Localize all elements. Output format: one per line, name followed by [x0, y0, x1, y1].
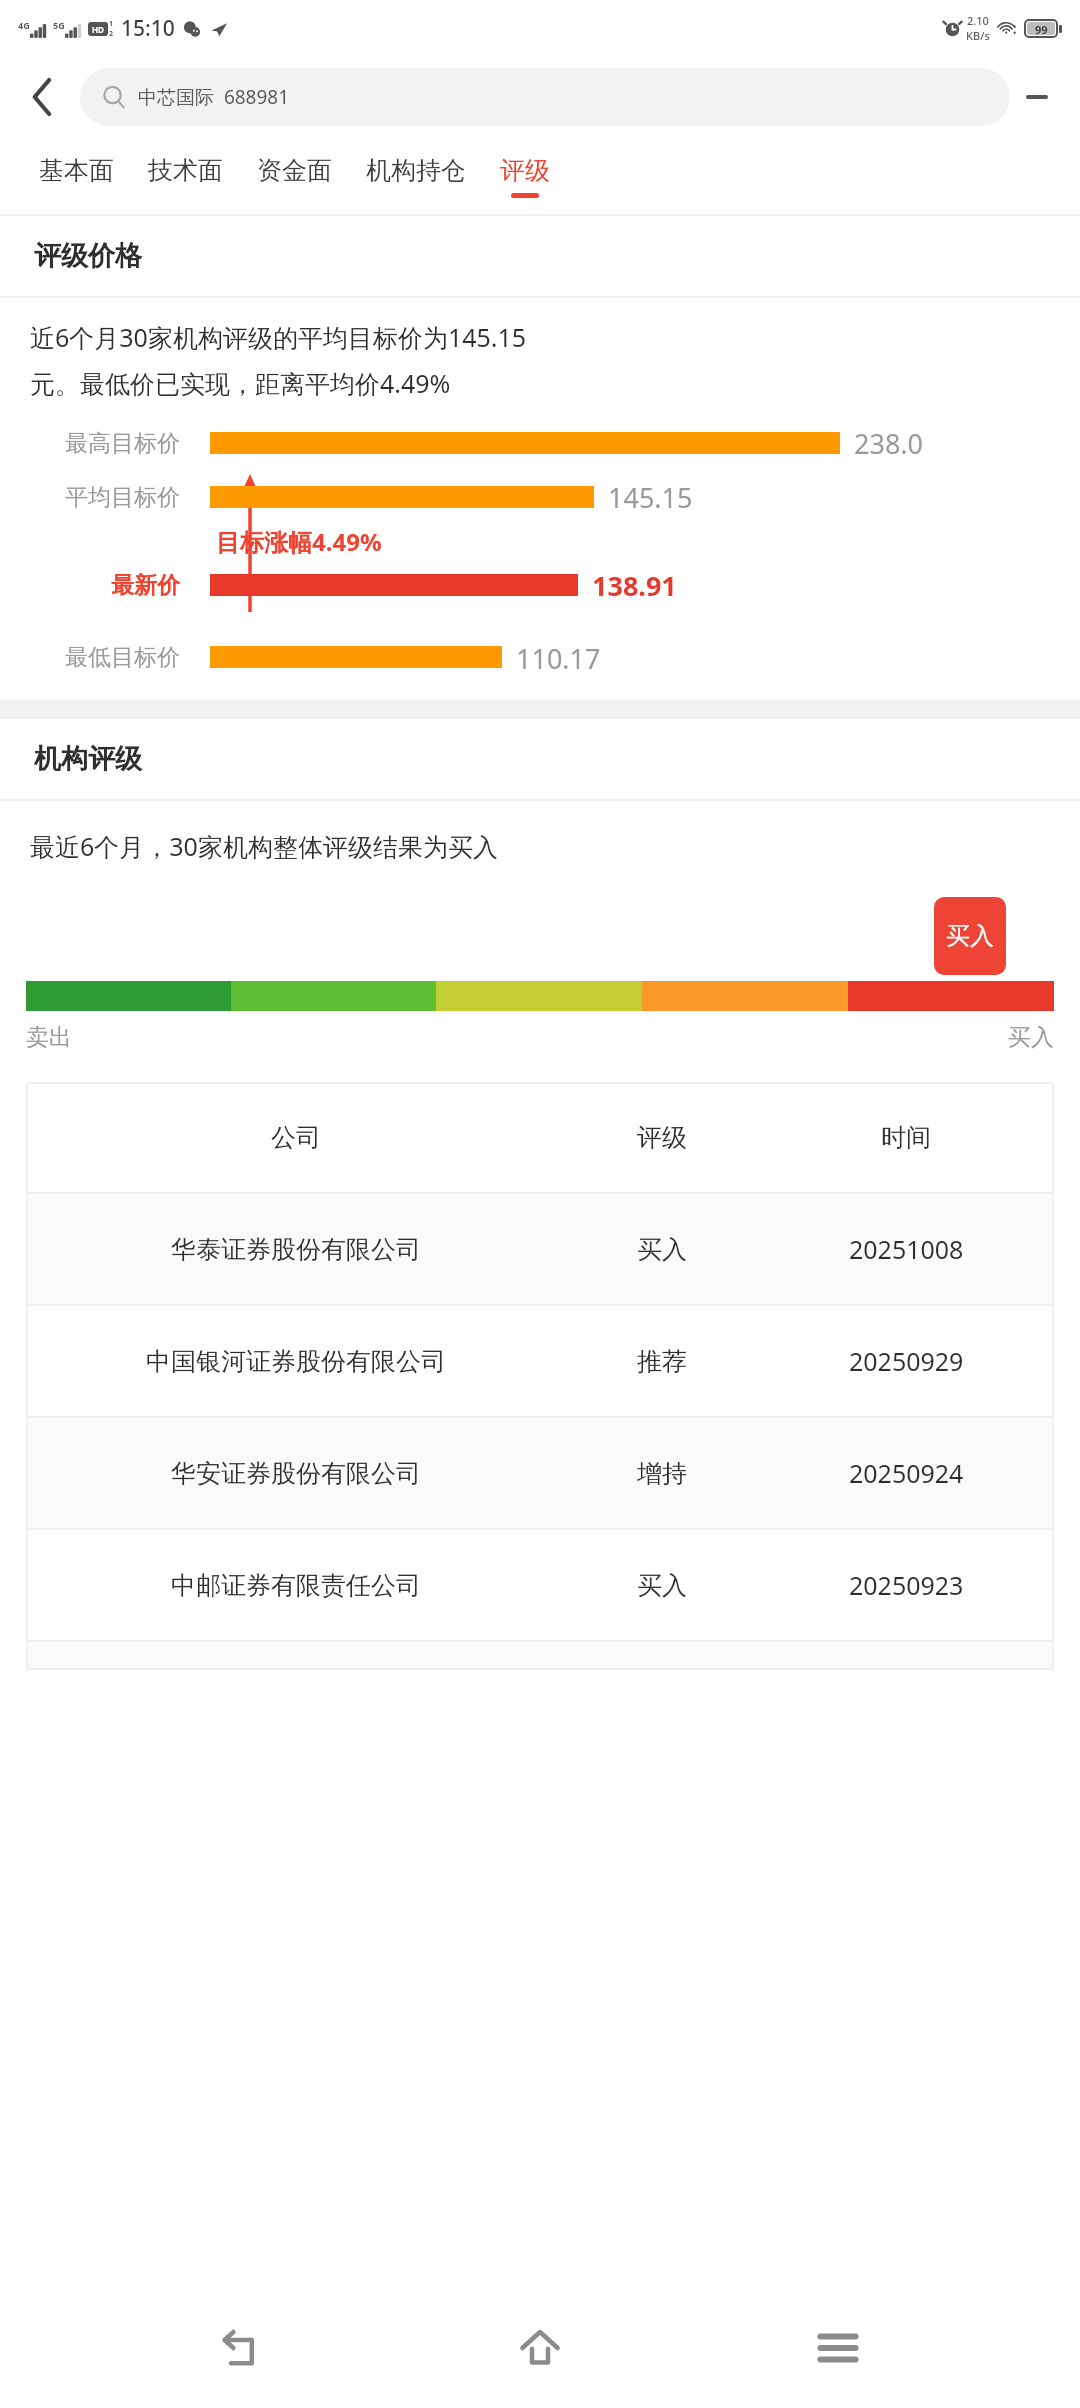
staticText: 评级	[500, 155, 550, 186]
staticText: 目标涨幅4.49%	[216, 525, 382, 558]
button[interactable]: 中芯国际 688981	[80, 68, 1010, 126]
staticText: 20250923	[849, 1568, 964, 1602]
staticText: 推荐	[637, 1346, 687, 1377]
staticText: 15:10	[121, 14, 175, 43]
staticText: 238.0	[854, 425, 924, 462]
staticText: 买入	[946, 921, 994, 951]
staticText: 中邮证券有限责任公司	[171, 1570, 421, 1601]
staticText: 近6个月30家机构评级的平均目标价为145.15	[30, 320, 527, 354]
staticText: 最新价	[111, 571, 180, 600]
staticText: 2.10	[967, 13, 989, 28]
staticText: 110.17	[516, 640, 601, 674]
button[interactable]: Minimize	[1010, 70, 1064, 124]
staticText: 机构持仓	[366, 155, 466, 186]
staticText: 145.15	[608, 479, 693, 516]
button[interactable]: 资金面	[240, 138, 349, 214]
staticText: 增持	[637, 1458, 687, 1489]
staticText: 机构评级	[34, 742, 142, 776]
button[interactable]: 评级	[483, 138, 567, 214]
staticText: 中国银河证券股份有限公司	[146, 1346, 446, 1377]
staticText: 20250929	[849, 1344, 964, 1378]
staticText: 中芯国际 688981	[138, 84, 290, 110]
staticText: 基本面	[39, 155, 114, 186]
button[interactable]: 华安证券股份有限公司	[26, 1418, 1054, 1528]
staticText: 技术面	[148, 155, 223, 186]
staticText: 138.91	[592, 567, 677, 604]
staticText: 最低目标价	[65, 643, 180, 672]
staticText: 5G	[53, 19, 65, 31]
button[interactable]: 中邮证券有限责任公司	[26, 1530, 1054, 1640]
staticText: 评级	[637, 1122, 687, 1153]
staticText: 20250924	[849, 1456, 964, 1490]
button[interactable]: Menu	[783, 2293, 893, 2403]
staticText: KB/s	[966, 28, 990, 43]
staticText: 2	[109, 29, 114, 39]
staticText: 1	[109, 19, 114, 29]
button[interactable]: Back	[16, 70, 70, 124]
staticText: 4G	[18, 19, 30, 31]
staticText: 卖出	[26, 1023, 72, 1052]
staticText: 华泰证券股份有限公司	[171, 1234, 421, 1265]
staticText: 资金面	[257, 155, 332, 186]
button[interactable]: 机构持仓	[349, 138, 483, 214]
button[interactable]: 公司	[26, 1082, 1054, 1192]
staticText: 元。最低价已实现，距离平均价4.49%	[30, 366, 451, 400]
button[interactable]: 华泰证券股份有限公司	[26, 1194, 1054, 1304]
staticText: 公司	[271, 1122, 321, 1153]
button[interactable]: 技术面	[131, 138, 240, 214]
button[interactable]: 中国银河证券股份有限公司	[26, 1306, 1054, 1416]
staticText: 最高目标价	[65, 429, 180, 458]
staticText: 华安证券股份有限公司	[171, 1458, 421, 1489]
staticText: 时间	[881, 1122, 931, 1153]
staticText: HD	[92, 24, 104, 35]
staticText: 最近6个月，30家机构整体评级结果为买入	[30, 829, 498, 863]
button[interactable]: 基本面	[22, 138, 131, 214]
staticText: 买入	[637, 1570, 687, 1601]
staticText: 20251008	[849, 1232, 964, 1266]
staticText: 买入	[1008, 1023, 1054, 1052]
staticText: 99	[1035, 22, 1048, 35]
button[interactable]: Back	[188, 2293, 298, 2403]
staticText: 买入	[637, 1234, 687, 1265]
button[interactable]: Home	[485, 2293, 595, 2403]
staticText: 平均目标价	[65, 483, 180, 512]
staticText: 评级价格	[34, 239, 142, 273]
